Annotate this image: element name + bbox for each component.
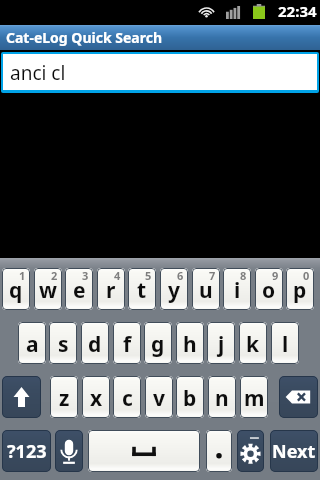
staticText: y: [168, 276, 180, 305]
staticText: k: [246, 330, 260, 359]
staticText: o: [262, 276, 276, 305]
button[interactable]: Backspace: [279, 376, 318, 418]
staticText: t: [137, 276, 147, 305]
staticText: j: [218, 330, 225, 359]
staticText: Cat-eLog Quick Search: [6, 28, 163, 47]
staticText: i: [234, 276, 241, 305]
button[interactable]: u: [192, 268, 220, 310]
staticText: g: [151, 330, 165, 359]
button[interactable]: anci cl: [3, 54, 317, 90]
button[interactable]: k: [239, 322, 267, 364]
button[interactable]: x: [82, 376, 110, 418]
staticText: q: [9, 276, 23, 305]
staticText: w: [39, 276, 57, 305]
staticText: 9: [272, 268, 279, 283]
staticText: 4: [114, 268, 121, 283]
button[interactable]: g: [144, 322, 172, 364]
button[interactable]: i: [223, 268, 251, 310]
button[interactable]: h: [176, 322, 204, 364]
staticText: x: [90, 384, 103, 413]
staticText: l: [282, 330, 289, 359]
staticText: 1: [19, 268, 26, 283]
button[interactable]: d: [81, 322, 109, 364]
staticText: f: [123, 330, 132, 359]
staticText: 2: [51, 268, 58, 283]
button[interactable]: v: [145, 376, 173, 418]
button[interactable]: m: [240, 376, 268, 418]
staticText: 22:34: [278, 1, 317, 21]
staticText: 5: [145, 268, 152, 283]
staticText: p: [293, 276, 307, 305]
button[interactable]: Next: [270, 430, 318, 472]
button[interactable]: a: [18, 322, 46, 364]
staticText: b: [183, 384, 197, 413]
staticText: s: [58, 330, 69, 359]
button[interactable]: w: [34, 268, 62, 310]
button[interactable]: Voice input: [55, 430, 83, 472]
staticText: Next: [272, 439, 316, 464]
button[interactable]: [206, 430, 232, 472]
staticText: a: [26, 330, 39, 359]
button[interactable]: Settings: [237, 430, 264, 472]
button[interactable]: p: [286, 268, 314, 310]
staticText: u: [199, 276, 213, 305]
staticText: 3: [82, 268, 89, 283]
button[interactable]: l: [271, 322, 299, 364]
staticText: d: [88, 330, 102, 359]
button[interactable]: o: [255, 268, 283, 310]
staticText: r: [106, 276, 116, 305]
button[interactable]: q: [2, 268, 30, 310]
staticText: anci cl: [10, 60, 66, 86]
staticText: z: [59, 384, 70, 413]
button[interactable]: c: [113, 376, 141, 418]
staticText: v: [153, 384, 165, 413]
staticText: e: [73, 276, 86, 305]
button[interactable]: r: [97, 268, 125, 310]
staticText: h: [183, 330, 197, 359]
staticText: c: [122, 384, 133, 413]
button[interactable]: s: [49, 322, 77, 364]
button[interactable]: e: [65, 268, 93, 310]
staticText: 0: [303, 268, 310, 283]
button[interactable]: Shift: [2, 376, 41, 418]
staticText: m: [244, 384, 265, 413]
staticText: 6: [177, 268, 184, 283]
staticText: 8: [240, 268, 247, 283]
button[interactable]: t: [128, 268, 156, 310]
button[interactable]: ?123: [2, 430, 51, 472]
button[interactable]: j: [207, 322, 235, 364]
staticText: n: [215, 384, 229, 413]
button[interactable]: y: [160, 268, 188, 310]
staticText: ?123: [7, 439, 47, 464]
button[interactable]: n: [208, 376, 236, 418]
button[interactable]: [88, 430, 200, 472]
button[interactable]: z: [50, 376, 78, 418]
staticText: 7: [209, 268, 216, 283]
button[interactable]: f: [113, 322, 141, 364]
button[interactable]: b: [176, 376, 204, 418]
